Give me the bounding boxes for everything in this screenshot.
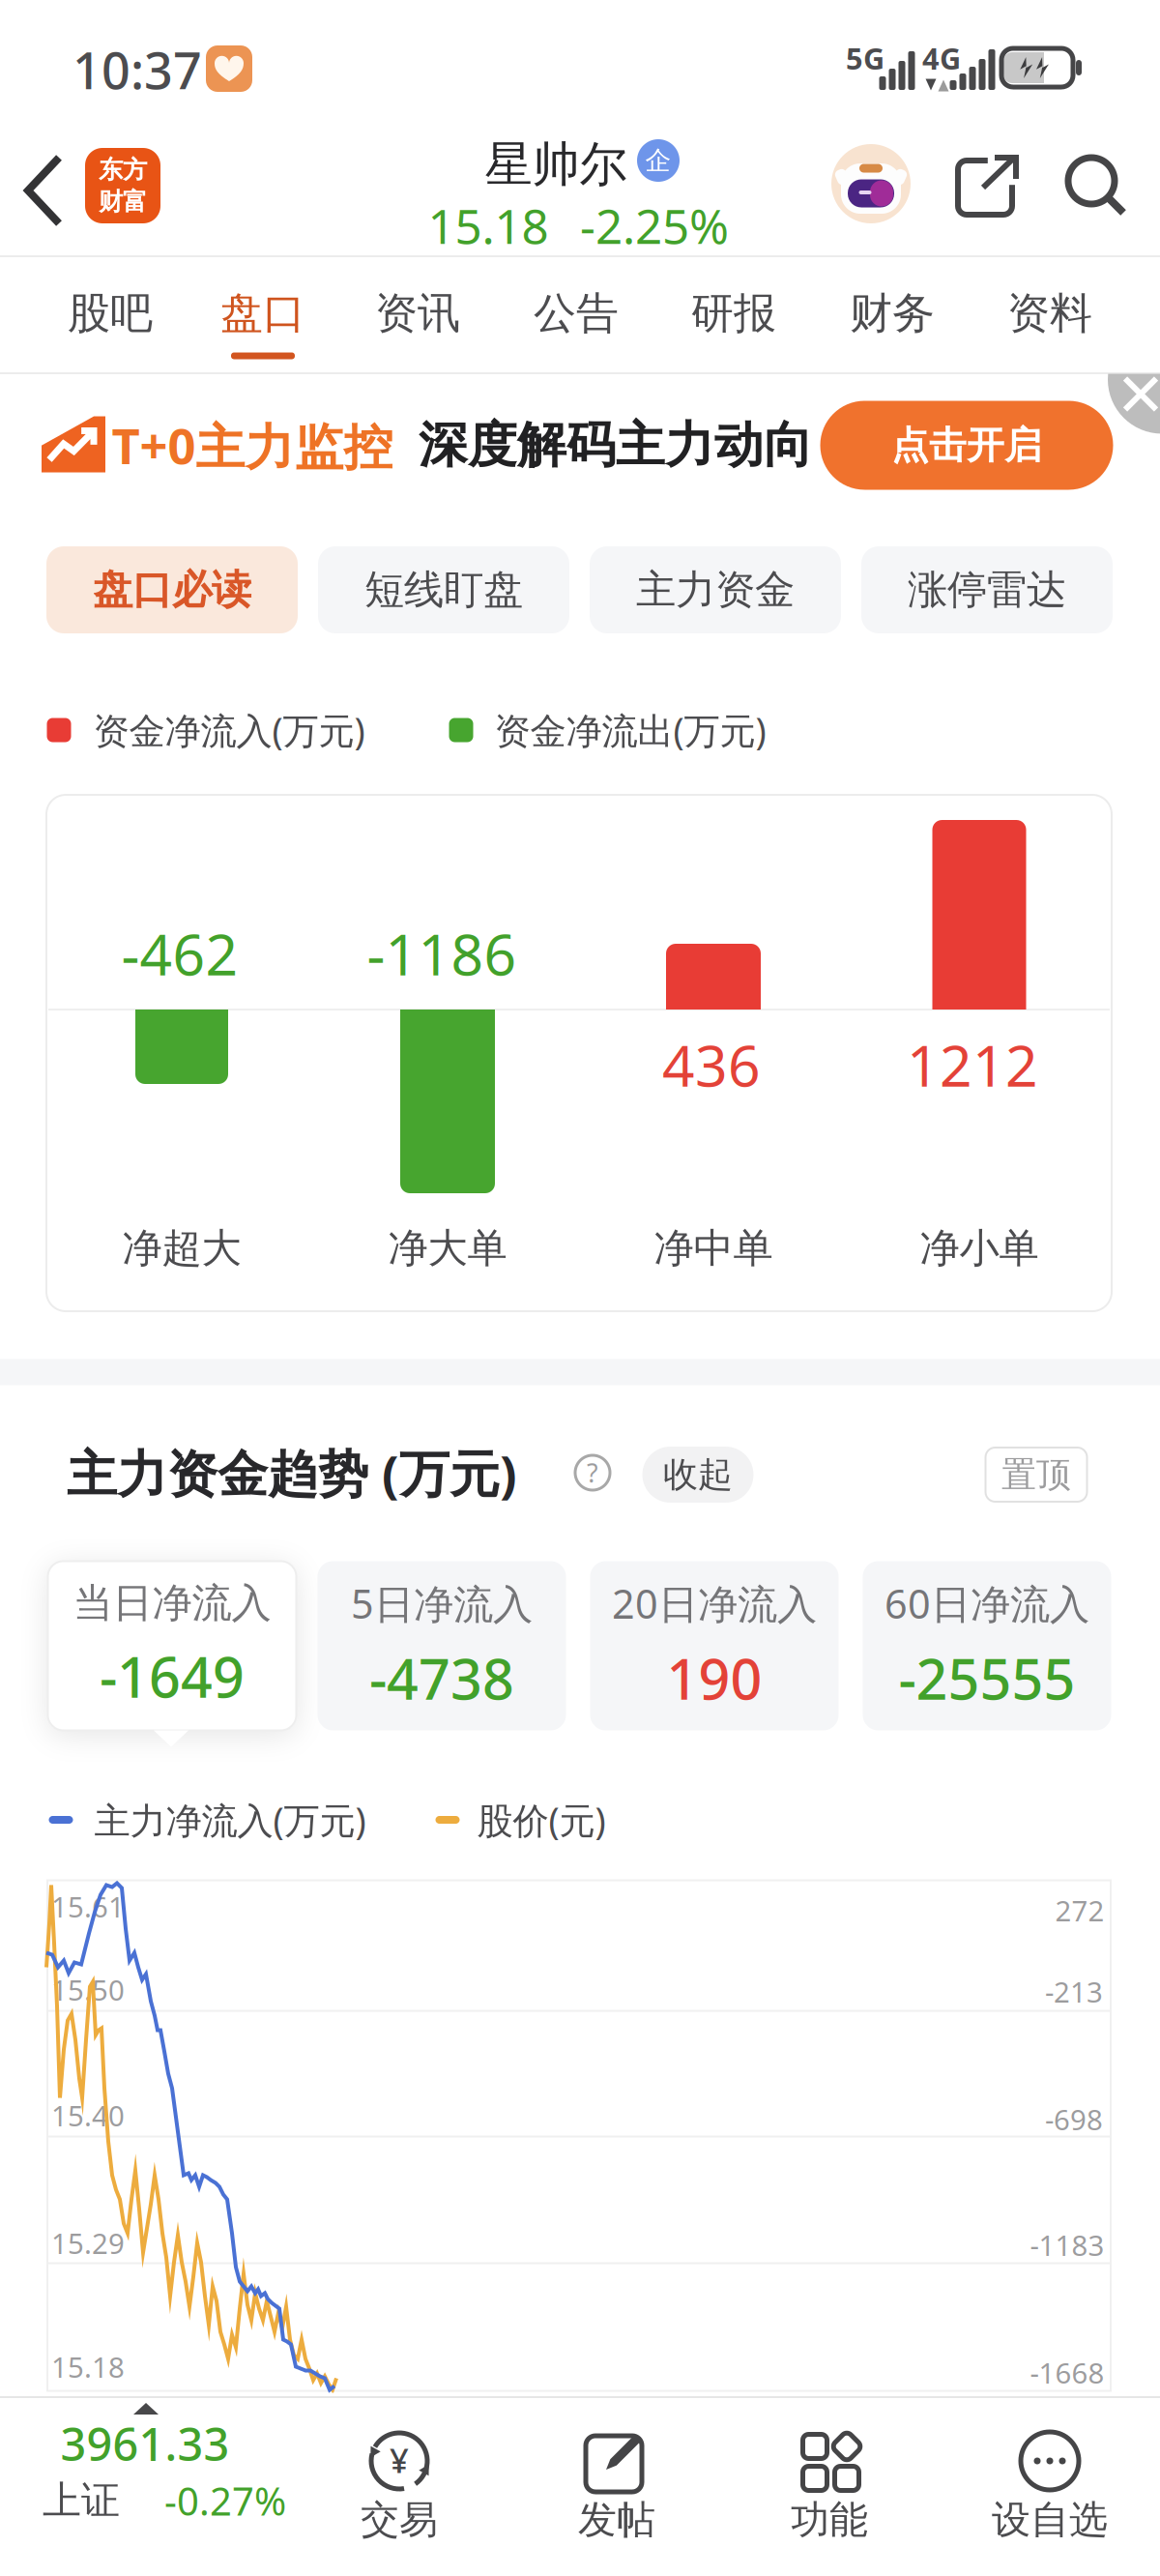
staticText: -2.25% — [580, 194, 729, 257]
staticText: 公告 — [534, 287, 619, 339]
staticText: 交易 — [361, 2496, 438, 2544]
staticText: 财富 — [99, 187, 147, 217]
button[interactable]: 当日净流入 — [48, 1561, 296, 1730]
staticText: 5G — [846, 38, 884, 78]
button[interactable]: 交易 — [312, 2413, 486, 2558]
staticText: 资讯 — [375, 287, 460, 339]
staticText: 资金净流入(万元) — [93, 706, 365, 754]
staticText: 企 — [645, 145, 671, 176]
button[interactable]: 财务 — [820, 255, 965, 373]
button[interactable]: 60日净流入 — [863, 1561, 1111, 1730]
button[interactable]: Share — [958, 155, 1018, 217]
button[interactable]: 收起 — [642, 1447, 754, 1503]
staticText: 净大单 — [388, 1224, 507, 1273]
staticText: 10:37 — [72, 36, 202, 103]
staticText: 研报 — [691, 287, 776, 339]
staticText: 上证 — [43, 2477, 120, 2524]
button[interactable]: 发帖 — [530, 2413, 704, 2558]
button[interactable]: 置顶 — [986, 1448, 1087, 1502]
staticText: 15.61 — [51, 1888, 125, 1925]
button[interactable]: 功能 — [742, 2413, 916, 2558]
staticText: 5日净流入 — [351, 1577, 533, 1630]
staticText: 主力净流入(万元) — [94, 1796, 366, 1844]
staticText: 短线盯盘 — [364, 565, 523, 614]
staticText: 功能 — [791, 2496, 868, 2544]
staticText: 4G — [922, 38, 961, 78]
staticText: 净中单 — [654, 1224, 773, 1273]
staticText: -25555 — [899, 1641, 1075, 1715]
button[interactable]: 帮助 — [571, 1451, 614, 1494]
staticText: 272 — [1055, 1891, 1104, 1929]
button[interactable]: 股吧 — [38, 255, 183, 373]
staticText: T+0主力监控 — [112, 413, 393, 478]
button[interactable]: 20日净流入 — [590, 1561, 839, 1730]
staticText: 点击开启 — [891, 422, 1042, 468]
staticText: 主力资金趋势 (万元) — [67, 1439, 517, 1506]
staticText: -4738 — [369, 1641, 514, 1715]
staticText: ? — [587, 1456, 598, 1490]
staticText: 1212 — [907, 1027, 1038, 1102]
staticText: 资料 — [1007, 287, 1092, 339]
staticText: -698 — [1045, 2100, 1103, 2138]
staticText: 盘口必读 — [93, 565, 251, 614]
staticText: 财务 — [850, 287, 935, 339]
button[interactable]: 盘口必读 — [46, 546, 298, 633]
button[interactable]: 5日净流入 — [318, 1561, 566, 1730]
staticText: 15.18 — [428, 194, 549, 257]
button[interactable]: 盘口 — [190, 255, 335, 373]
staticText: 15.50 — [51, 1971, 125, 2008]
staticText: 涨停雷达 — [908, 565, 1066, 614]
staticText: 星帅尔 — [485, 135, 627, 194]
staticText: 盘口 — [220, 287, 305, 339]
staticText: 东方 — [99, 155, 147, 185]
staticText: -1186 — [367, 916, 517, 991]
staticText: 3961.33 — [60, 2414, 230, 2474]
staticText: 资金净流出(万元) — [494, 706, 766, 754]
button[interactable]: 东方财富 — [85, 148, 160, 223]
staticText: 15.18 — [51, 2348, 125, 2386]
staticText: -1668 — [1030, 2354, 1104, 2391]
button[interactable]: 资料 — [977, 255, 1122, 373]
button[interactable]: AI助手 — [831, 144, 911, 223]
staticText: 主力资金 — [636, 565, 795, 614]
staticText: 60日净流入 — [884, 1577, 1089, 1630]
button[interactable]: 主力资金 — [590, 546, 841, 633]
button[interactable]: 短线盯盘 — [318, 546, 569, 633]
staticText: 深度解码主力动向 — [419, 415, 813, 475]
staticText: 置顶 — [1001, 1453, 1071, 1496]
staticText: 15.29 — [51, 2224, 125, 2262]
button[interactable]: Back — [28, 158, 59, 223]
staticText: 设自选 — [992, 2496, 1108, 2544]
button[interactable]: Search — [1064, 154, 1128, 218]
button[interactable]: 资讯 — [345, 255, 490, 373]
staticText: -213 — [1045, 1973, 1103, 2010]
staticText: -1649 — [100, 1639, 245, 1713]
staticText: 190 — [667, 1641, 762, 1715]
button[interactable]: 公告 — [504, 255, 649, 373]
button[interactable]: 涨停雷达 — [861, 546, 1113, 633]
staticText: 收起 — [663, 1453, 733, 1496]
staticText: 净超大 — [122, 1224, 241, 1273]
button[interactable]: Close — [1108, 325, 1160, 434]
button[interactable]: 点击开启 — [820, 401, 1113, 490]
staticText: 15.40 — [51, 2096, 125, 2134]
staticText: 当日净流入 — [73, 1579, 271, 1628]
staticText: 发帖 — [578, 2496, 655, 2544]
staticText: 20日净流入 — [612, 1577, 817, 1630]
staticText: -462 — [121, 916, 238, 991]
staticText: 股价(元) — [477, 1796, 606, 1844]
staticText: 436 — [662, 1027, 761, 1102]
staticText: 净小单 — [920, 1224, 1039, 1273]
button[interactable]: 设自选 — [963, 2413, 1137, 2558]
staticText: -1183 — [1030, 2226, 1104, 2264]
staticText: ¥ — [390, 2438, 409, 2482]
staticText: 股吧 — [68, 287, 153, 339]
button[interactable]: 3961.33 — [39, 2415, 329, 2561]
staticText: -0.27% — [164, 2475, 286, 2526]
button[interactable]: 研报 — [661, 255, 806, 373]
